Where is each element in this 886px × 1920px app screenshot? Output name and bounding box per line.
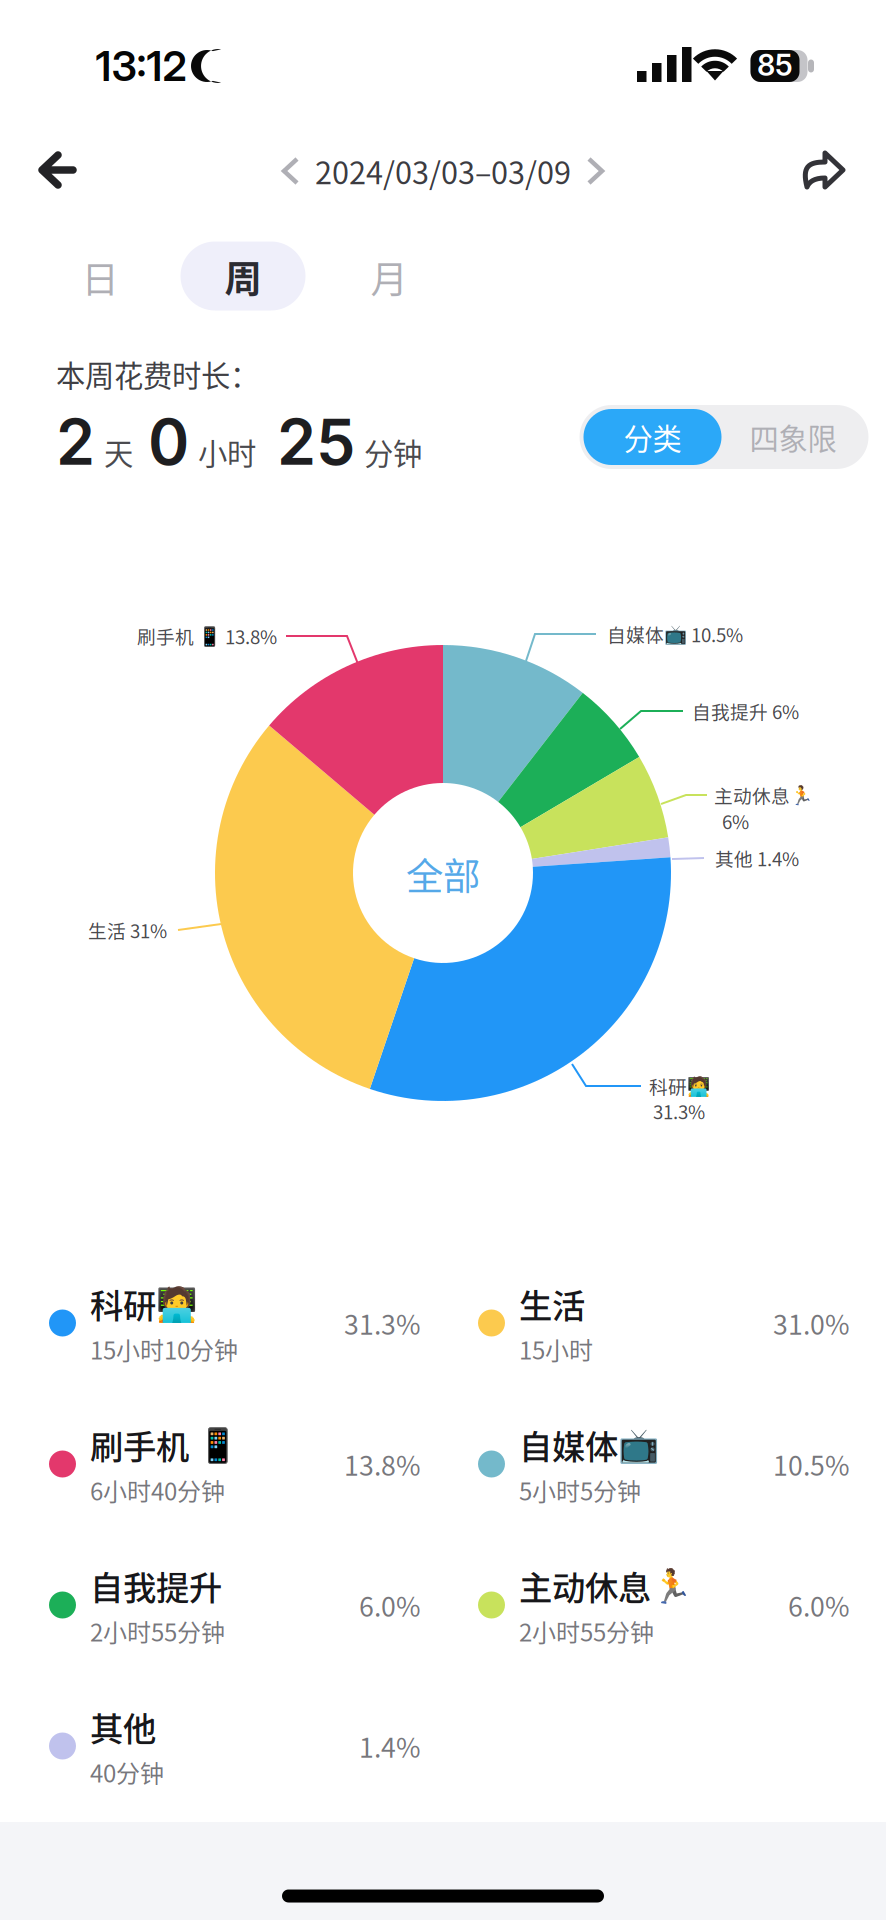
staticText: 5小时5分钟 — [519, 1473, 641, 1508]
button[interactable]: 四象限 — [721, 409, 864, 465]
staticText: 刷手机 📱 13.8% — [137, 622, 277, 649]
staticText: 自我提升 6% — [692, 697, 799, 724]
staticText: 10.5% — [773, 1445, 850, 1483]
staticText: 小时 — [198, 431, 256, 473]
staticText: 6% — [722, 807, 749, 834]
button[interactable]: 其他 — [49, 1686, 421, 1806]
staticText: 周 — [224, 249, 261, 303]
staticText: 15小时10分钟 — [90, 1332, 238, 1367]
button[interactable]: Share — [778, 123, 874, 219]
staticText: 生活 — [519, 1279, 585, 1328]
staticText: 1.4% — [359, 1727, 421, 1765]
staticText: 6.0% — [788, 1586, 850, 1624]
staticText: 40分钟 — [90, 1755, 164, 1790]
button[interactable]: 月 — [326, 242, 451, 311]
button[interactable]: 周 — [180, 241, 305, 310]
staticText: 刷手机 📱 — [90, 1420, 239, 1469]
staticText: 85 — [757, 47, 793, 83]
staticText: 2 — [56, 404, 95, 480]
staticText: 6.0% — [359, 1586, 421, 1624]
staticText: 25 — [277, 404, 355, 480]
button[interactable]: 生活 — [478, 1263, 850, 1383]
staticText: 主动休息🏃 — [519, 1561, 693, 1610]
button[interactable]: 日 — [37, 242, 162, 311]
staticText: 分类 — [623, 416, 681, 458]
staticText: 科研🧑‍💻 — [649, 1072, 710, 1099]
button[interactable]: 分类 — [583, 409, 721, 465]
staticText: 2小时55分钟 — [90, 1614, 225, 1649]
staticText: 生活 31% — [88, 916, 167, 943]
staticText: 日 — [81, 250, 118, 304]
staticText: 月 — [370, 250, 407, 304]
staticText: 分钟 — [364, 431, 422, 473]
button[interactable]: 2024/03/03–03/09 — [274, 125, 612, 217]
staticText: 其他 — [90, 1702, 156, 1751]
button[interactable]: 刷手机 📱 — [49, 1404, 421, 1524]
staticText: 2024/03/03–03/09 — [315, 149, 571, 193]
staticText: 全部 — [406, 847, 480, 901]
button[interactable]: 自我提升 — [49, 1545, 421, 1665]
staticText: 15小时 — [519, 1332, 593, 1367]
staticText: 6小时40分钟 — [90, 1473, 225, 1508]
staticText: 13:12 — [95, 41, 186, 91]
staticText: 31.3% — [344, 1304, 421, 1342]
staticText: 自我提升 — [90, 1561, 222, 1610]
staticText: 自媒体📺 10.5% — [607, 620, 743, 647]
button[interactable]: 主动休息🏃 — [478, 1545, 850, 1665]
button[interactable]: 自媒体📺 — [478, 1404, 850, 1524]
button[interactable]: 科研🧑‍💻 — [49, 1263, 421, 1383]
staticText: 天 — [104, 431, 133, 473]
staticText: 31.0% — [773, 1304, 850, 1342]
staticText: 13.8% — [344, 1445, 421, 1483]
staticText: 31.3% — [653, 1097, 705, 1124]
staticText: 四象限 — [749, 416, 836, 458]
staticText: 0 — [148, 404, 189, 480]
staticText: 主动休息🏃 — [714, 781, 813, 808]
staticText: 科研🧑‍💻 — [90, 1279, 198, 1328]
button[interactable]: Back — [9, 122, 105, 218]
staticText: 自媒体📺 — [519, 1420, 660, 1469]
staticText: 2小时55分钟 — [519, 1614, 654, 1649]
staticText: 本周花费时长： — [56, 353, 259, 395]
staticText: 其他 1.4% — [715, 844, 799, 871]
